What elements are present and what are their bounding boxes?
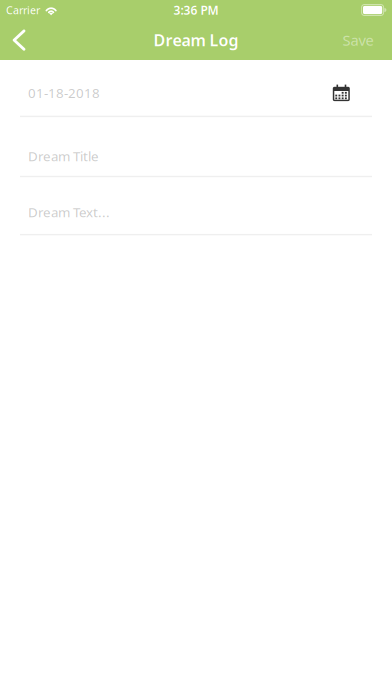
staticText: 3:36 PM	[173, 2, 218, 18]
staticText: Dream Title	[28, 147, 99, 165]
staticText: Dream Text...	[28, 203, 110, 221]
button[interactable]: Dream Text...	[0, 177, 372, 234]
button[interactable]: Back	[0, 20, 38, 60]
button[interactable]: Save	[332, 20, 384, 60]
button[interactable]: Dream Title	[0, 117, 372, 176]
staticText: Dream Log	[153, 29, 238, 51]
button[interactable]: Choose date	[321, 61, 361, 115]
staticText: 01-18-2018	[28, 84, 100, 102]
button[interactable]: 01-18-2018	[0, 60, 321, 116]
staticText: Carrier	[6, 3, 40, 17]
staticText: Save	[342, 30, 373, 50]
